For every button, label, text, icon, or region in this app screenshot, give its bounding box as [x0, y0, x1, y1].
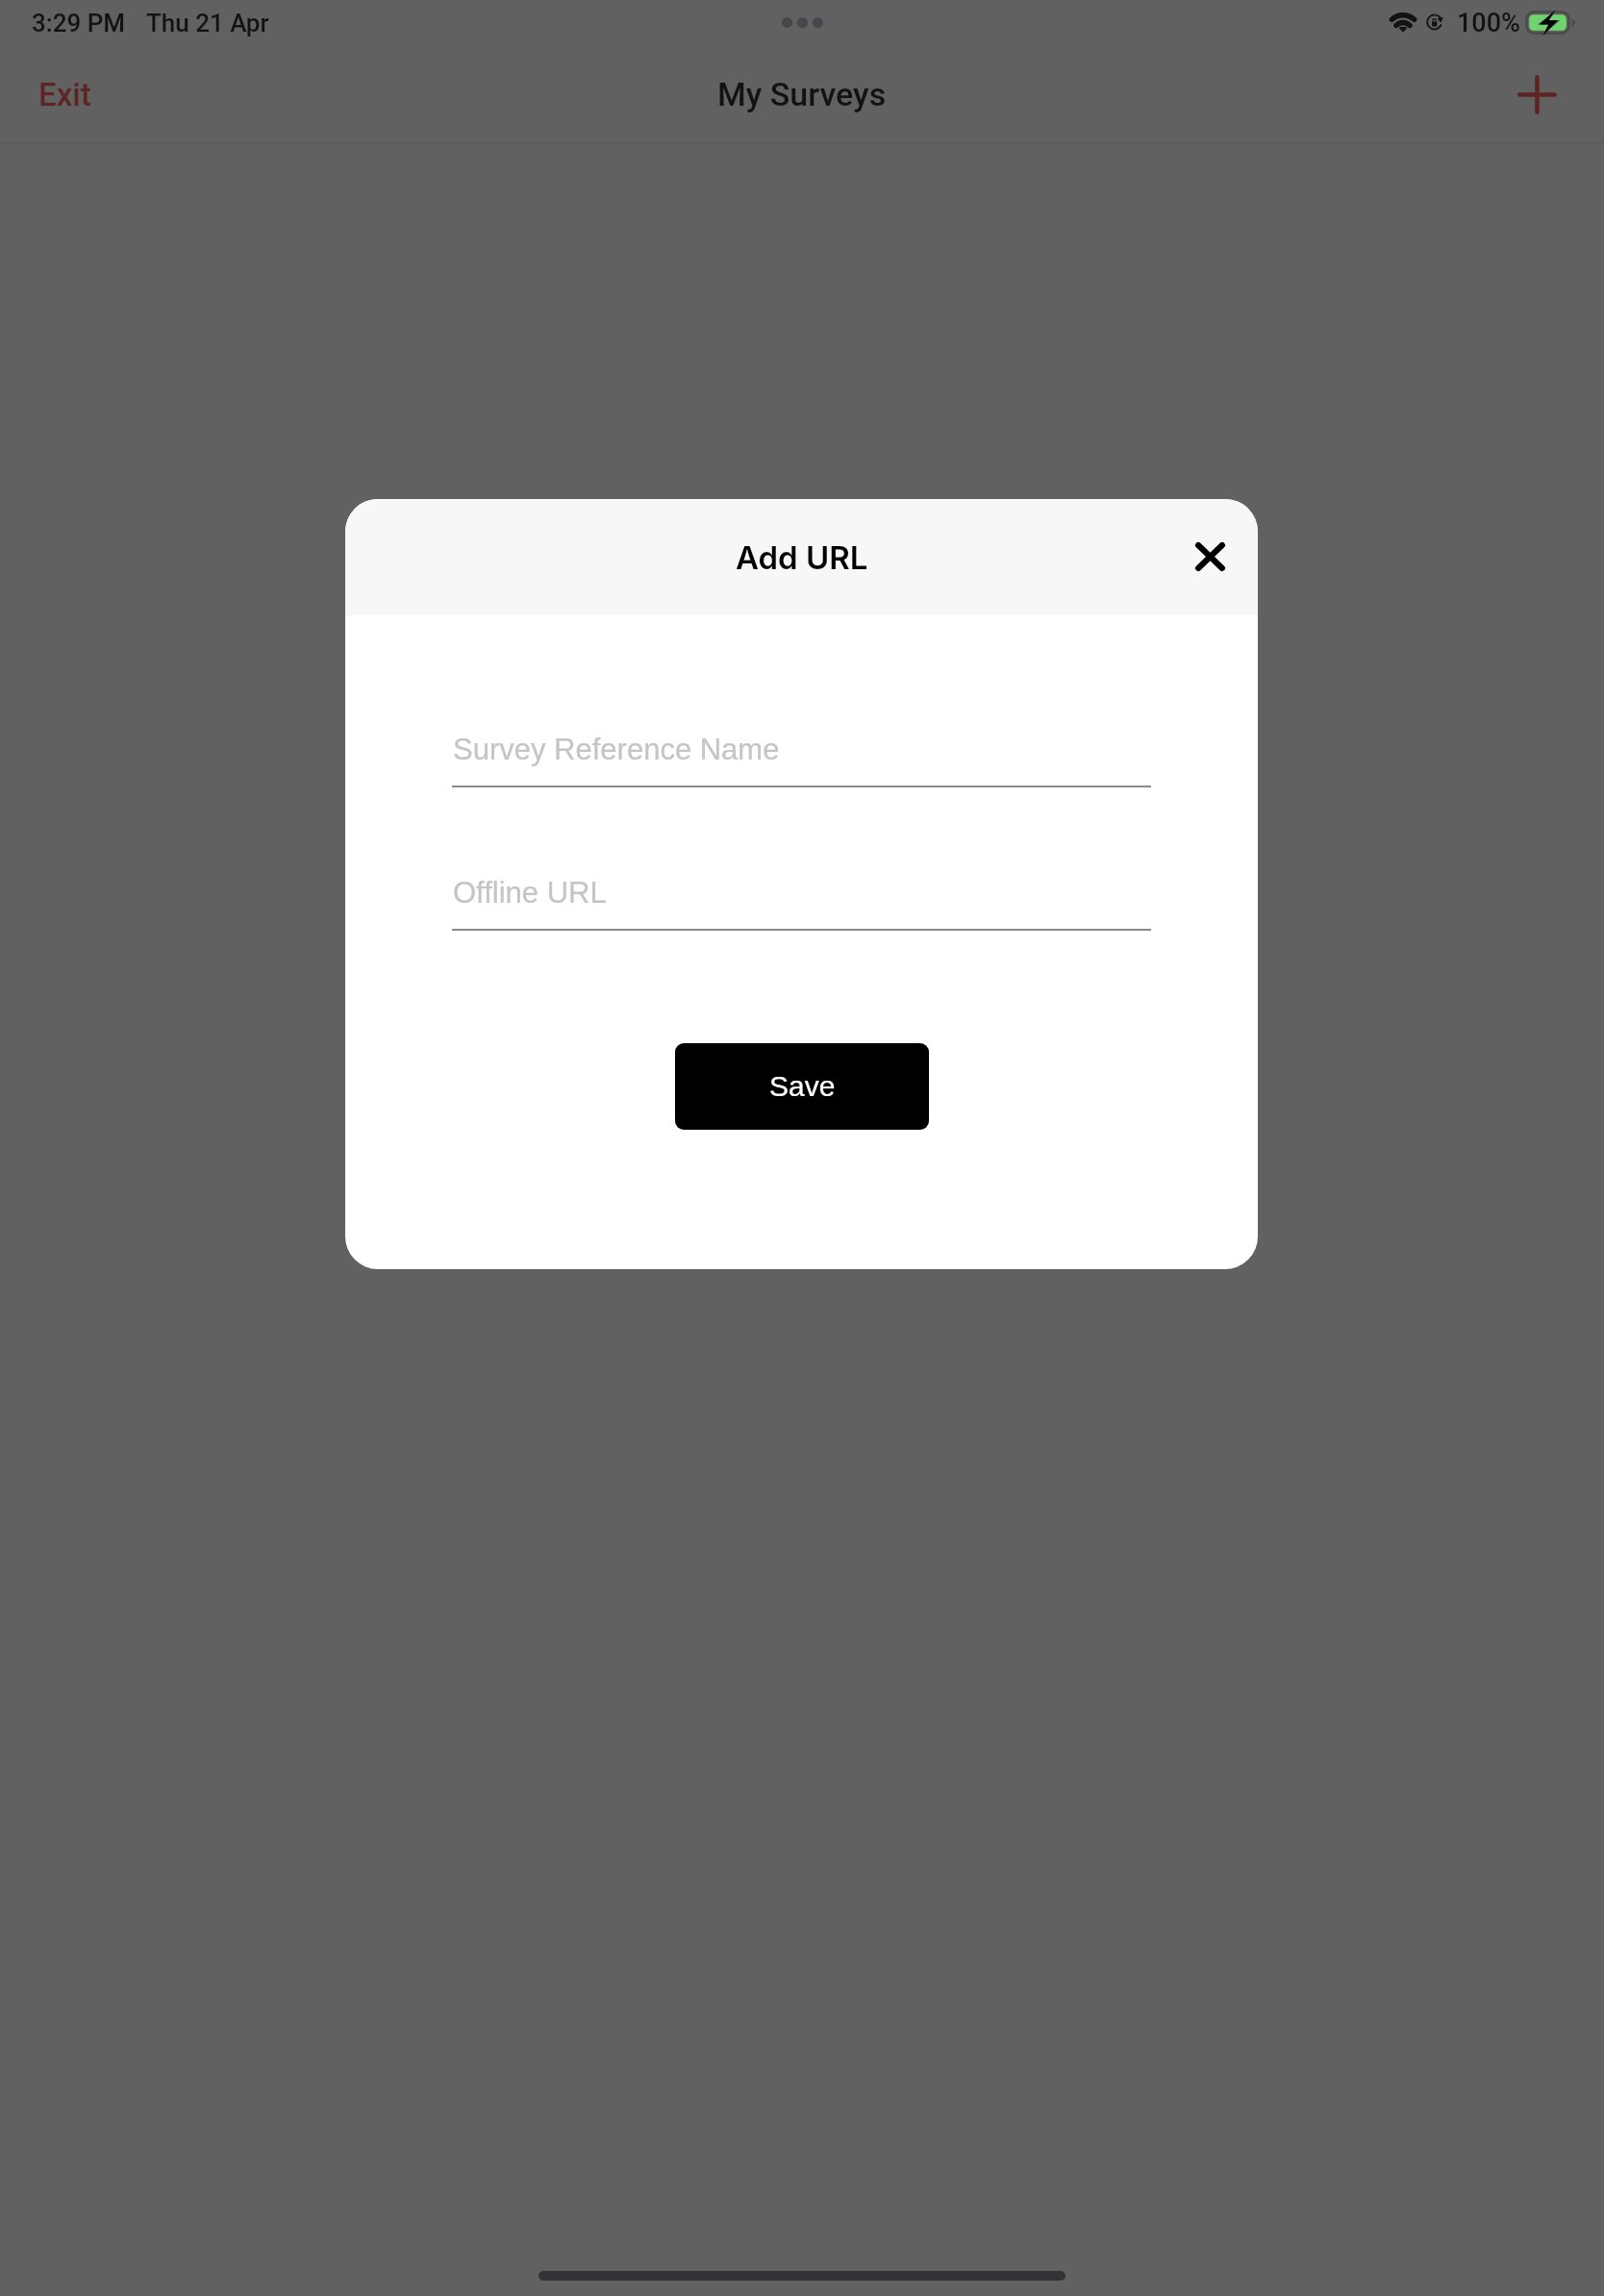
staticText: Survey Reference Name	[453, 733, 780, 766]
staticText: Add URL	[736, 538, 868, 577]
staticText: Thu 21 Apr	[146, 9, 269, 37]
button[interactable]: Survey Reference Name	[452, 725, 1151, 787]
staticText: Save	[769, 1070, 836, 1103]
button[interactable]: Close	[1176, 523, 1243, 590]
staticText: 3:29 PM	[32, 9, 126, 37]
staticText: My Surveys	[717, 75, 887, 113]
staticText: 100%	[1457, 8, 1520, 38]
staticText: Offline URL	[453, 876, 607, 910]
button[interactable]: Add	[1508, 65, 1566, 123]
staticText: Exit	[38, 76, 91, 113]
button[interactable]: Exit	[10, 62, 120, 128]
button[interactable]: Offline URL	[452, 868, 1151, 931]
button[interactable]: Save	[675, 1043, 929, 1130]
